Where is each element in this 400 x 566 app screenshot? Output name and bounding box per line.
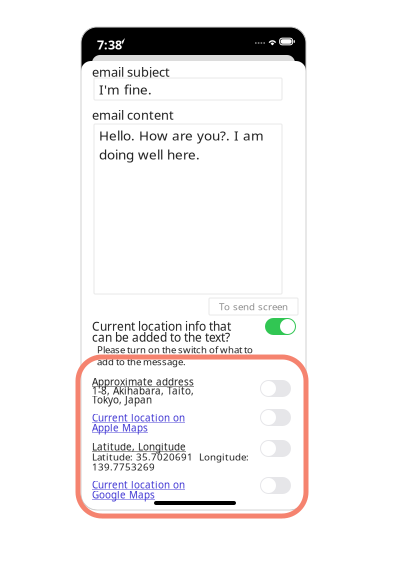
staticText: Current location on	[92, 478, 185, 491]
staticText: Google Maps	[92, 488, 155, 501]
staticText: Apple Maps	[92, 421, 148, 434]
staticText: can be added to the text?	[92, 329, 230, 345]
staticText: 139.7753269	[92, 460, 155, 473]
button[interactable]: To send screen	[209, 298, 298, 315]
staticText: add to the message.	[97, 355, 186, 368]
staticText: 1-8, Akihabara, Taito,	[92, 384, 194, 397]
staticText: doing well here.	[99, 145, 200, 163]
button[interactable]: Location info enabled	[265, 318, 296, 335]
staticText: email content	[92, 106, 174, 123]
button[interactable]: Add to message	[260, 477, 291, 494]
staticText: Current location info that	[92, 318, 231, 334]
staticText: Approximate address	[92, 375, 194, 388]
button[interactable]: Add to message	[260, 409, 291, 426]
staticText: To send screen	[219, 300, 288, 313]
staticText: Latitude: 35.7020691 Longitude:	[92, 450, 249, 463]
staticText: Current location on	[92, 411, 185, 424]
button[interactable]: Add to message	[260, 440, 291, 457]
button[interactable]: Add to message	[260, 380, 291, 397]
staticText: Hello. How are you?. I am	[99, 126, 264, 144]
staticText: email subject	[92, 63, 170, 80]
staticText: 7:38	[97, 36, 122, 53]
staticText: Latitude, Longitude	[92, 440, 186, 453]
staticText: I'm fine.	[99, 80, 152, 98]
staticText: Tokyo, Japan	[92, 393, 152, 406]
staticText: Please turn on the switch of what to	[97, 343, 253, 356]
